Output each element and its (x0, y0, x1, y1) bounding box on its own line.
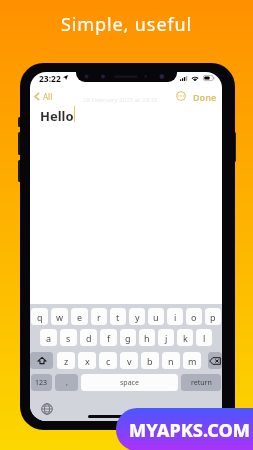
staticText: u (153, 311, 159, 323)
button[interactable]: y (129, 308, 145, 325)
staticText: x (85, 355, 90, 367)
button[interactable]: p (205, 308, 221, 325)
staticText: 28 February 2023 at 23:22 (83, 96, 158, 104)
button[interactable]: s (60, 329, 77, 346)
button[interactable]: m (183, 352, 201, 369)
button[interactable]: return (181, 374, 221, 391)
staticText: o (191, 311, 197, 323)
button[interactable]: n (162, 352, 180, 369)
button[interactable]: c (99, 352, 117, 369)
staticText: Simple, useful (0, 12, 253, 37)
staticText: n (168, 355, 174, 367)
staticText: r (97, 311, 101, 323)
button[interactable]: Backspace (208, 352, 222, 369)
button[interactable]: w (51, 308, 68, 325)
staticText: m (188, 355, 197, 367)
button[interactable]: v (120, 352, 138, 369)
button[interactable]: b (141, 352, 159, 369)
button[interactable]: e (71, 308, 88, 325)
button[interactable]: MYAPKS.COM (116, 408, 253, 450)
staticText: z (64, 355, 69, 367)
staticText: Done (193, 91, 217, 103)
staticText: All (43, 91, 53, 102)
staticText: c (106, 355, 111, 367)
staticText: e (77, 311, 83, 323)
button[interactable]: All (34, 91, 53, 102)
staticText: d (86, 332, 92, 344)
staticText: s (66, 332, 71, 344)
button[interactable]: , (55, 374, 78, 391)
button[interactable]: z (57, 352, 75, 369)
button[interactable]: f (100, 329, 117, 346)
staticText: b (147, 355, 153, 367)
button[interactable]: d (80, 329, 97, 346)
button[interactable]: k (177, 329, 193, 346)
staticText: f (107, 332, 111, 344)
staticText: return (191, 378, 212, 388)
staticText: Hello (40, 107, 74, 125)
button[interactable]: o (186, 308, 202, 325)
staticText: , (66, 378, 68, 388)
button[interactable]: More options (174, 89, 188, 103)
staticText: p (210, 311, 216, 323)
button[interactable]: j (158, 329, 174, 346)
button[interactable]: i (167, 308, 183, 325)
button[interactable]: t (110, 308, 126, 325)
staticText: q (37, 311, 43, 323)
staticText: MYAPKS.COM (129, 418, 250, 443)
button[interactable]: h (139, 329, 155, 346)
button[interactable]: g (120, 329, 136, 346)
staticText: h (144, 332, 150, 344)
button[interactable]: l (196, 329, 212, 346)
button[interactable]: Switch keyboard (40, 402, 53, 415)
staticText: 123 (35, 378, 48, 388)
staticText: t (116, 311, 120, 323)
button[interactable]: Done (193, 91, 217, 103)
staticText: w (56, 311, 64, 323)
button[interactable]: space (81, 374, 178, 391)
button[interactable]: q (31, 308, 48, 325)
button[interactable]: 123 (31, 374, 52, 391)
button[interactable]: x (78, 352, 96, 369)
staticText: j (165, 332, 168, 344)
staticText: 23:22 (39, 73, 61, 85)
staticText: k (183, 332, 188, 344)
staticText: a (46, 332, 52, 344)
staticText: i (174, 311, 177, 323)
button[interactable]: u (148, 308, 164, 325)
button[interactable]: Shift (30, 352, 53, 369)
button[interactable]: r (91, 308, 107, 325)
staticText: g (125, 332, 131, 344)
staticText: space (120, 378, 139, 388)
button[interactable]: a (40, 329, 57, 346)
staticText: v (127, 355, 132, 367)
staticText: l (203, 332, 206, 344)
staticText: y (135, 311, 140, 323)
